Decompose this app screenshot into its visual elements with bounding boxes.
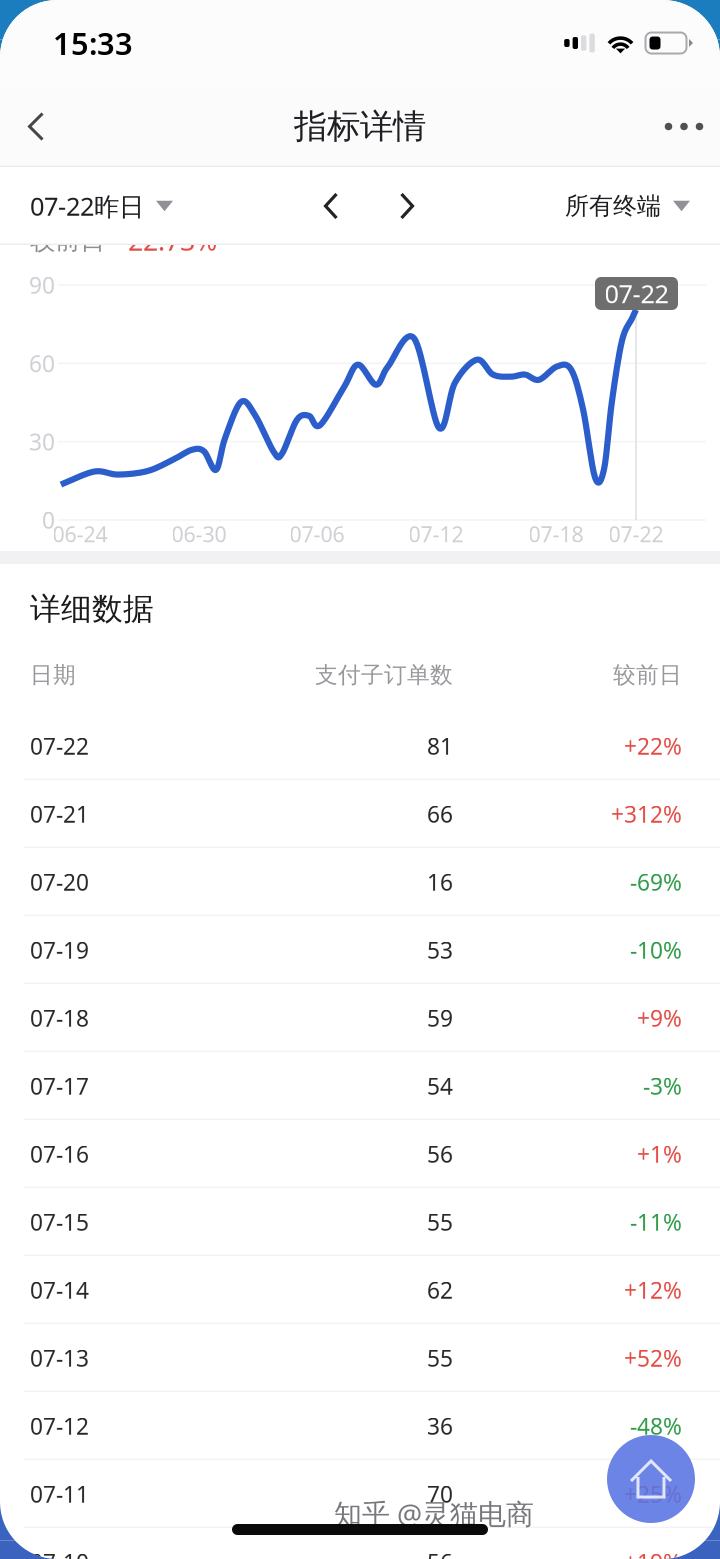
- staticText: +12%: [624, 1275, 682, 1305]
- button[interactable]: 07-21: [0, 780, 720, 848]
- staticText: +1%: [637, 1139, 682, 1169]
- button[interactable]: 07-19: [0, 916, 720, 984]
- staticText: 0: [42, 505, 55, 535]
- staticText: 07-17: [30, 1071, 89, 1101]
- staticText: 07-12: [30, 1411, 89, 1441]
- button[interactable]: 07-13: [0, 1324, 720, 1392]
- staticText: 07-15: [30, 1207, 89, 1237]
- staticText: 07-18: [528, 520, 583, 548]
- staticText: 07-16: [30, 1139, 89, 1169]
- staticText: 指标详情: [294, 106, 426, 147]
- staticText: 07-20: [30, 867, 89, 897]
- staticText: 07-14: [30, 1275, 89, 1305]
- staticText: +52%: [624, 1343, 682, 1373]
- button[interactable]: 07-22: [0, 712, 720, 780]
- staticText: 16: [427, 867, 453, 897]
- button[interactable]: 07-12: [0, 1392, 720, 1460]
- staticText: 知乎 @灵猫电商: [334, 1495, 534, 1532]
- button[interactable]: 07-15: [0, 1188, 720, 1256]
- button[interactable]: 所有终端: [565, 167, 720, 245]
- staticText: 07-21: [30, 799, 89, 829]
- button[interactable]: 07-20: [0, 848, 720, 916]
- staticText: 53: [427, 935, 453, 965]
- staticText: 07-18: [30, 1003, 89, 1033]
- button[interactable]: 首页: [607, 1435, 695, 1523]
- staticText: 70: [427, 1479, 453, 1509]
- button[interactable]: 07-17: [0, 1052, 720, 1120]
- staticText: +312%: [611, 799, 682, 829]
- staticText: +9%: [637, 1003, 682, 1033]
- button[interactable]: 下一天: [378, 167, 436, 245]
- staticText: -11%: [630, 1207, 682, 1237]
- button[interactable]: 返回: [0, 86, 72, 167]
- button[interactable]: 上一天: [302, 167, 360, 245]
- staticText: 07-22昨日: [30, 189, 144, 223]
- staticText: 所有终端: [565, 191, 661, 221]
- button[interactable]: 更多: [648, 86, 720, 167]
- staticText: 06-24: [52, 520, 107, 548]
- staticText: -10%: [630, 935, 682, 965]
- button[interactable]: 07-16: [0, 1120, 720, 1188]
- staticText: +22%: [624, 731, 682, 761]
- staticText: -22.73%: [119, 223, 217, 258]
- staticText: 06-30: [171, 520, 226, 548]
- staticText: 07-22: [604, 277, 668, 310]
- staticText: -69%: [630, 867, 682, 897]
- staticText: 59: [427, 1003, 453, 1033]
- staticText: 54: [427, 1071, 453, 1101]
- staticText: 66: [427, 799, 453, 829]
- staticText: 60: [29, 348, 55, 378]
- staticText: 07-19: [30, 935, 89, 965]
- staticText: 55: [427, 1343, 453, 1373]
- staticText: 07-06: [289, 520, 344, 548]
- button[interactable]: 07-22昨日: [0, 167, 173, 245]
- staticText: 56: [427, 1547, 453, 1559]
- staticText: 详细数据: [30, 590, 154, 628]
- staticText: 支付子订单数: [315, 661, 453, 689]
- staticText: 07-11: [30, 1479, 89, 1509]
- staticText: 90: [29, 270, 55, 300]
- staticText: 07-10: [30, 1547, 89, 1559]
- button[interactable]: 07-18: [0, 984, 720, 1052]
- staticText: 15:33: [53, 23, 133, 63]
- staticText: 07-12: [408, 520, 463, 548]
- button[interactable]: 07-14: [0, 1256, 720, 1324]
- button[interactable]: 07-10: [0, 1528, 720, 1559]
- staticText: 日期: [30, 661, 76, 689]
- staticText: 30: [29, 427, 55, 457]
- staticText: 07-13: [30, 1343, 89, 1373]
- staticText: 07-22: [608, 520, 663, 548]
- staticText: 较前日: [613, 661, 682, 689]
- staticText: 较前日: [30, 225, 105, 256]
- staticText: 56: [427, 1139, 453, 1169]
- staticText: +19%: [624, 1547, 682, 1559]
- staticText: -48%: [630, 1411, 682, 1441]
- staticText: 62: [427, 1275, 453, 1305]
- staticText: 81: [427, 731, 453, 761]
- staticText: 07-22: [30, 731, 89, 761]
- staticText: 36: [427, 1411, 453, 1441]
- staticText: 55: [427, 1207, 453, 1237]
- staticText: -3%: [643, 1071, 682, 1101]
- button[interactable]: 07-11: [0, 1460, 720, 1528]
- staticText: +25%: [624, 1479, 682, 1509]
